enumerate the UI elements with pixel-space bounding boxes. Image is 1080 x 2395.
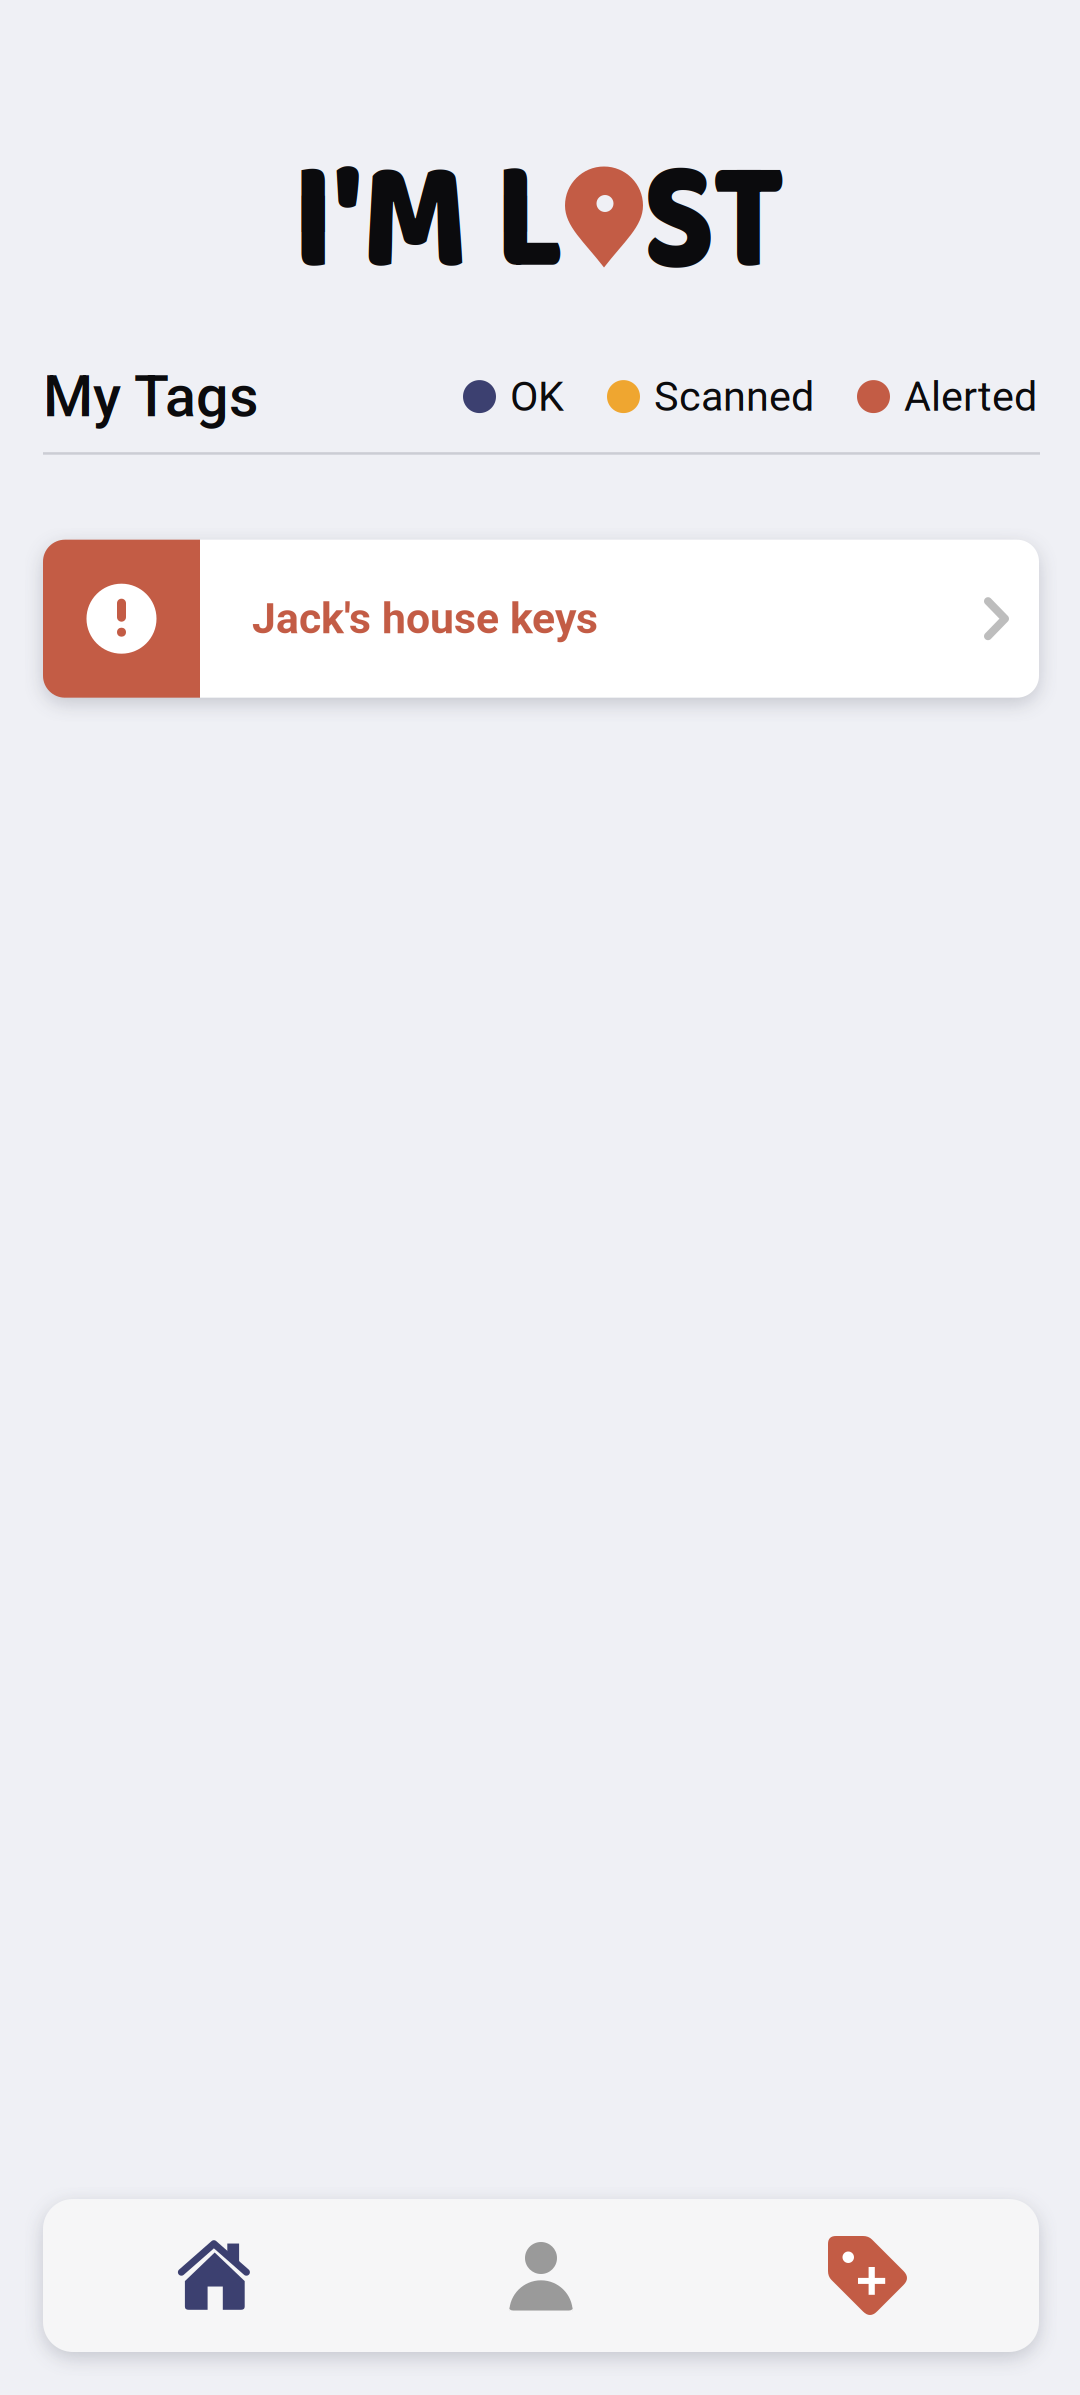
button[interactable]: Profile xyxy=(386,2199,696,2352)
staticText: Scanned xyxy=(654,372,814,421)
button[interactable]: Jack's house keys xyxy=(43,540,1039,698)
staticText: Jack's house keys xyxy=(252,594,598,644)
staticText: Alerted xyxy=(904,372,1037,421)
button[interactable]: Home xyxy=(43,2199,386,2352)
button[interactable]: Add tag xyxy=(696,2199,1039,2352)
staticText: OK xyxy=(510,372,564,421)
staticText: My Tags xyxy=(43,363,259,430)
staticText: ST xyxy=(629,98,798,362)
staticText: I'M L xyxy=(271,98,584,362)
